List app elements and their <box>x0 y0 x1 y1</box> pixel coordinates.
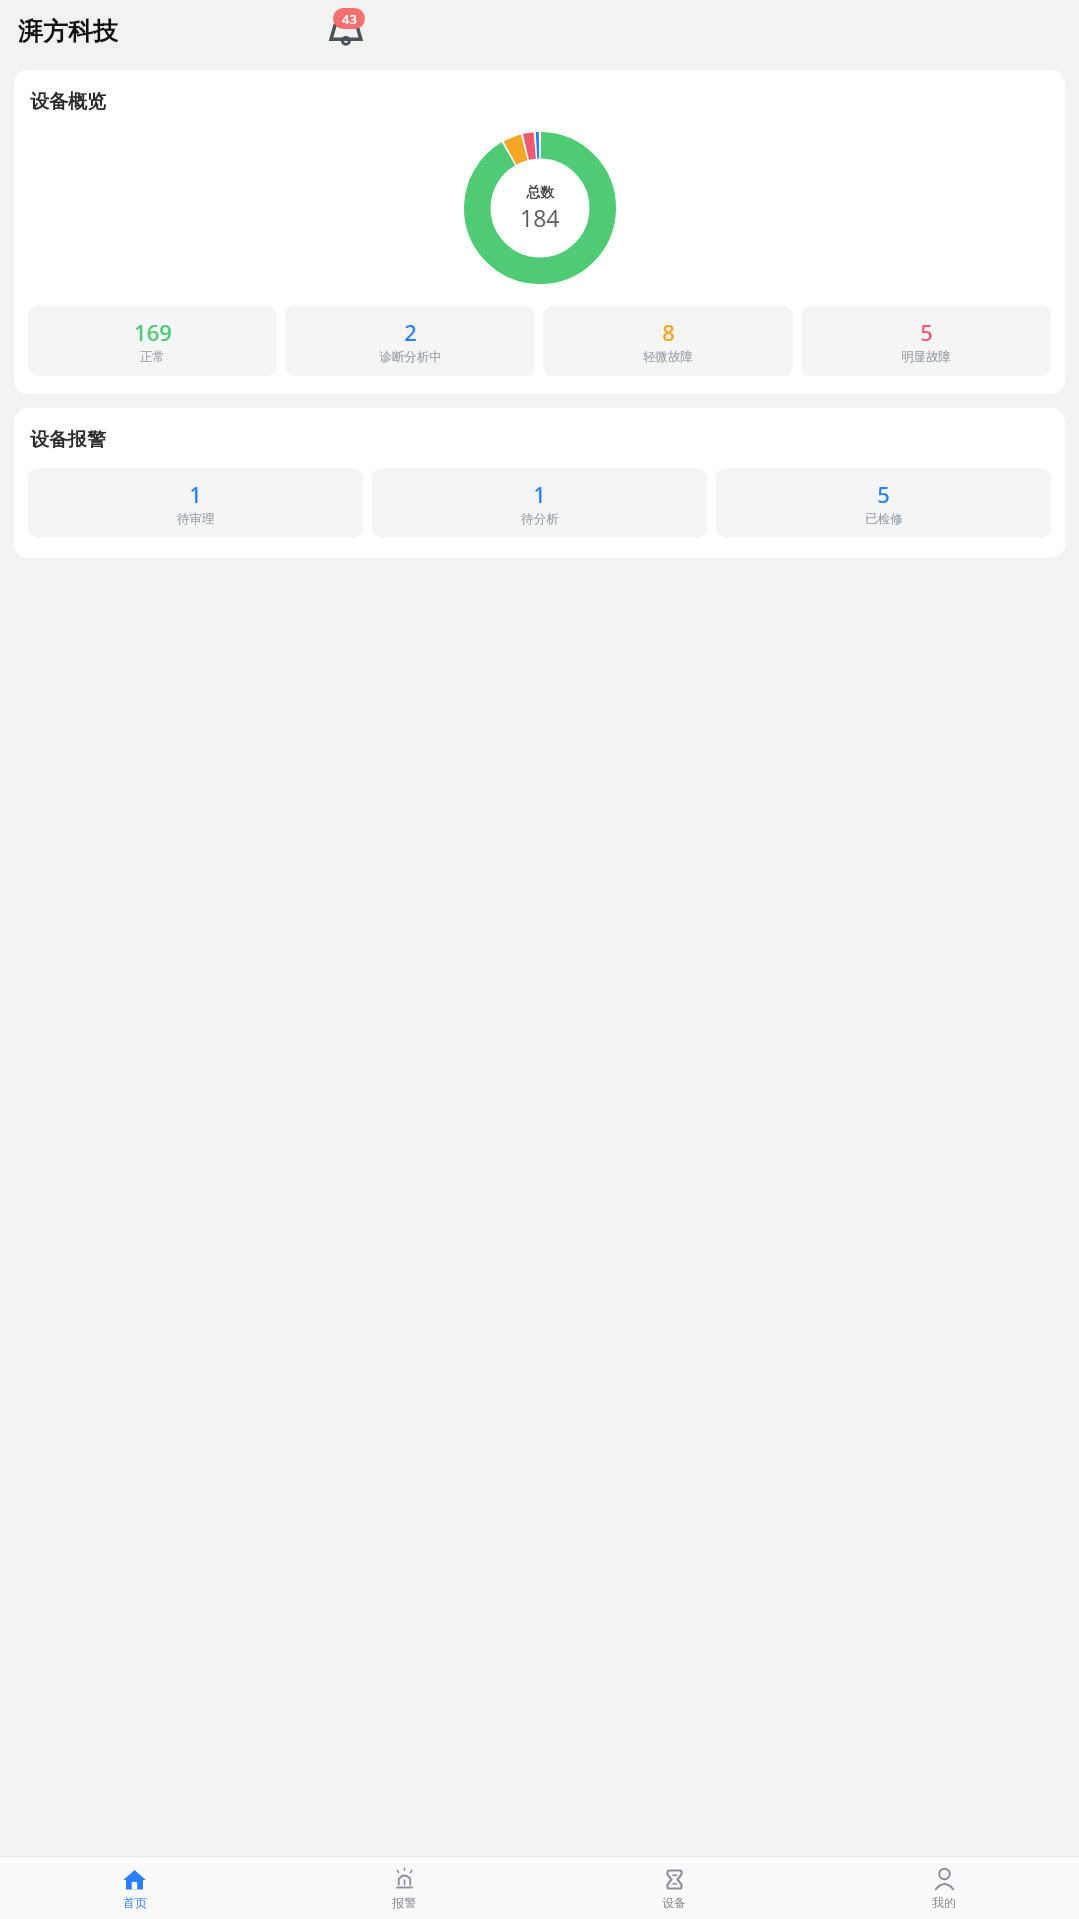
button[interactable]: 169 <box>28 306 277 376</box>
staticText: 设备 <box>662 1895 686 1910</box>
staticText: 1 <box>533 479 546 509</box>
button[interactable]: 5 <box>716 468 1051 538</box>
staticText: 正常 <box>140 349 165 365</box>
button[interactable]: 报警 <box>269 1857 539 1919</box>
button[interactable]: 5 <box>801 306 1051 376</box>
button[interactable]: 我的 <box>809 1857 1079 1919</box>
staticText: 明显故障 <box>901 349 951 365</box>
staticText: 报警 <box>392 1895 416 1910</box>
staticText: 设备报警 <box>30 428 106 452</box>
button[interactable]: 8 <box>543 306 793 376</box>
staticText: 待分析 <box>521 511 559 527</box>
button[interactable]: 1 <box>28 468 363 538</box>
staticText: 5 <box>920 317 933 347</box>
button[interactable]: 1 <box>372 468 707 538</box>
button[interactable]: 首页 <box>0 1857 269 1919</box>
button[interactable]: Notifications <box>322 8 368 54</box>
staticText: 待审理 <box>177 511 215 527</box>
staticText: 轻微故障 <box>643 349 693 365</box>
button[interactable]: 2 <box>285 306 535 376</box>
staticText: 1 <box>189 479 202 509</box>
staticText: 169 <box>134 317 172 347</box>
staticText: 首页 <box>123 1895 147 1910</box>
staticText: 湃方科技 <box>18 16 118 47</box>
staticText: 2 <box>404 317 417 347</box>
button[interactable]: 设备 <box>539 1857 809 1919</box>
staticText: 设备概览 <box>30 90 106 114</box>
staticText: 8 <box>662 317 675 347</box>
staticText: 总数 <box>526 184 554 202</box>
staticText: 5 <box>877 479 890 509</box>
staticText: 已检修 <box>865 511 903 527</box>
staticText: 184 <box>520 202 560 233</box>
staticText: 诊断分析中 <box>379 349 442 365</box>
staticText: 我的 <box>932 1895 956 1910</box>
staticText: 43 <box>342 10 357 28</box>
